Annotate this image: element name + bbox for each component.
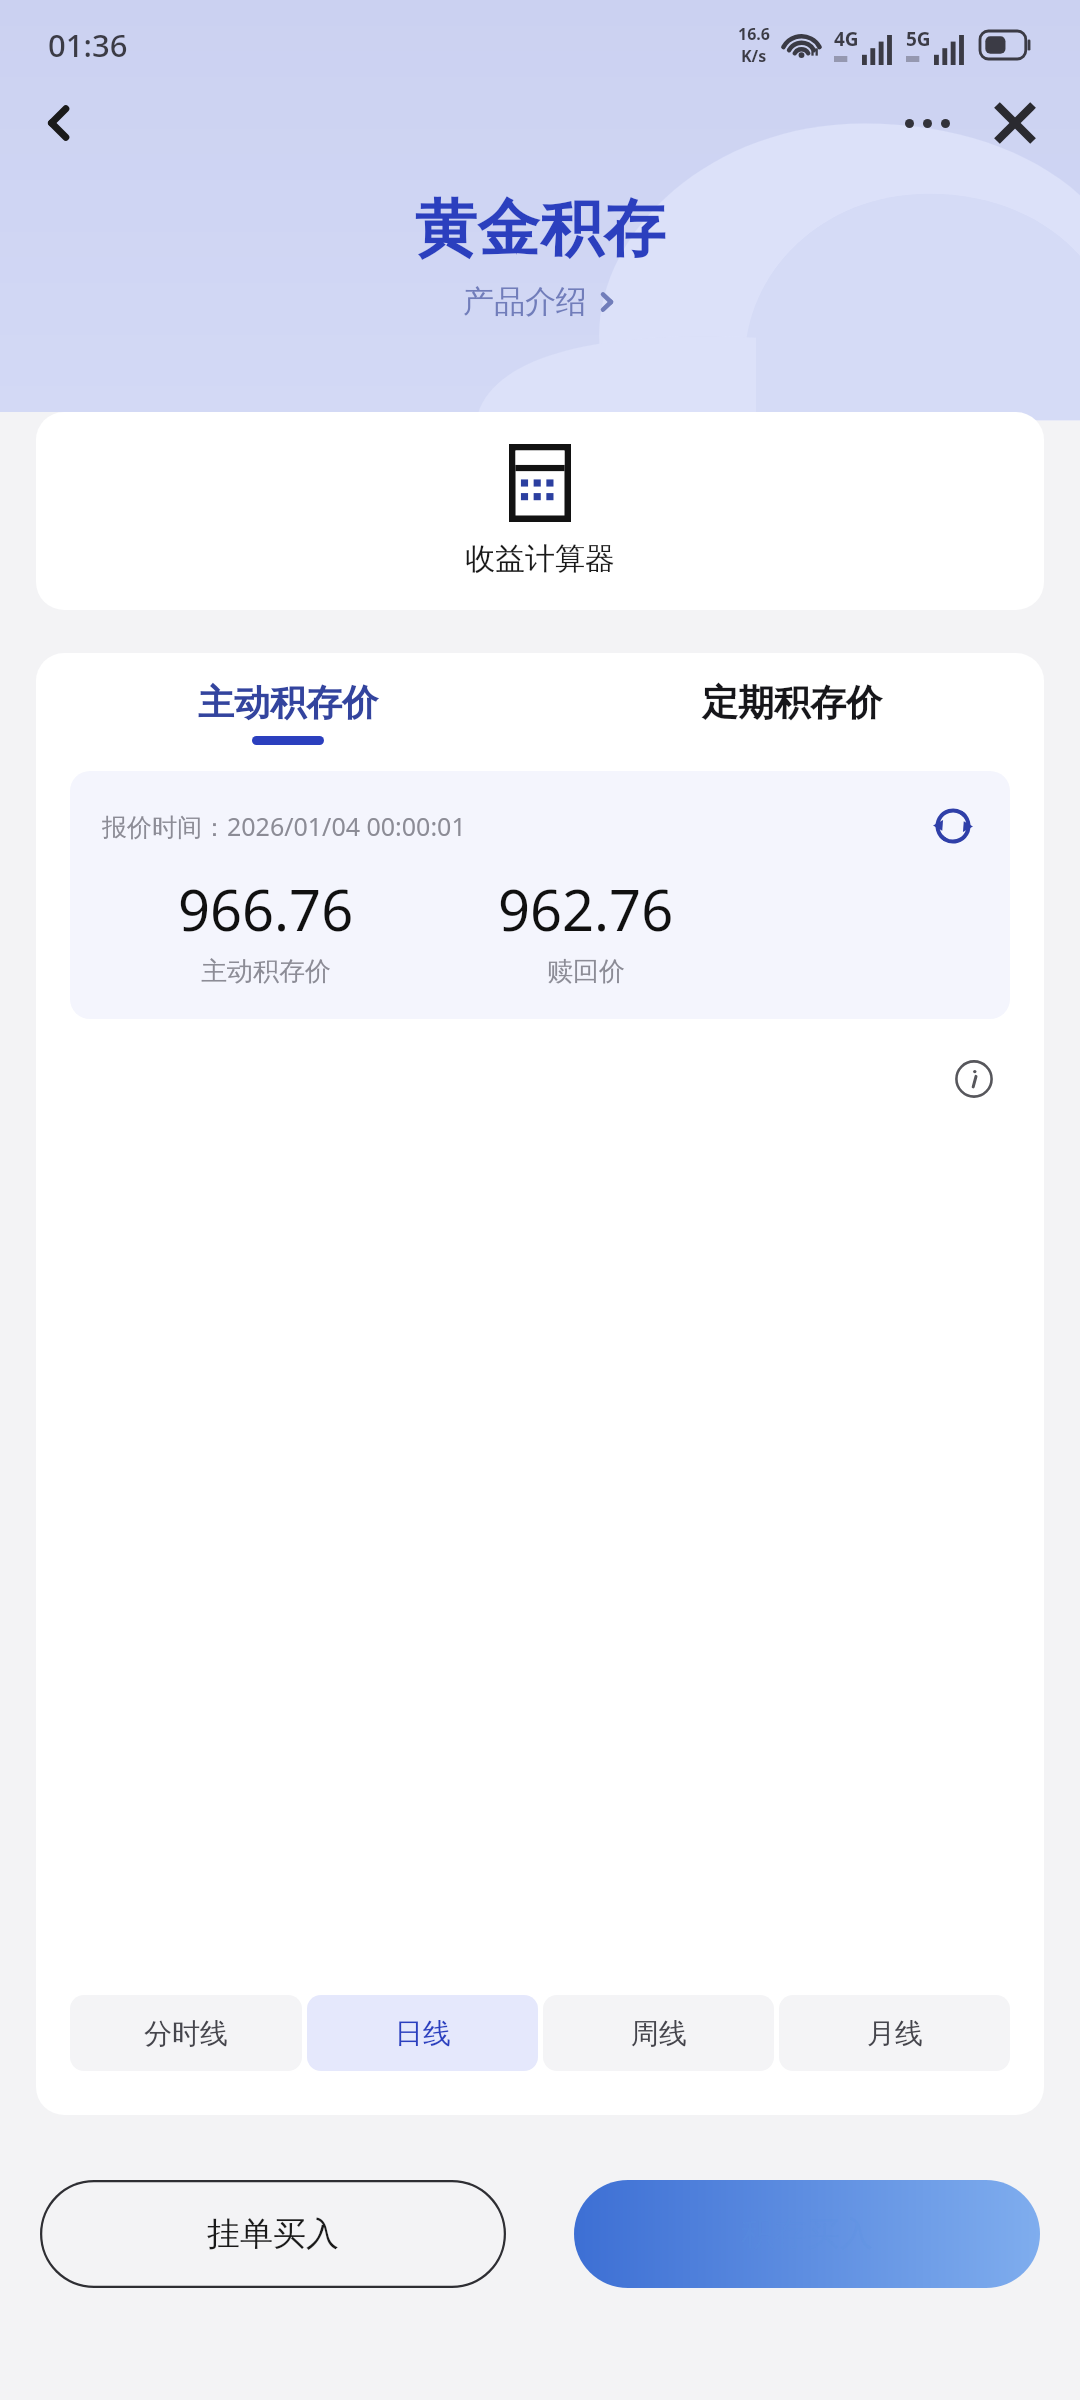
staticText: 挂单买入 — [207, 2213, 339, 2255]
staticText: 产品介绍 — [463, 282, 587, 321]
staticText: 966.76 — [178, 871, 354, 947]
button[interactable]: 挂单买入 — [40, 2180, 506, 2288]
staticText: 5G — [906, 26, 931, 52]
staticText: 4G — [834, 26, 859, 52]
button[interactable]: Back — [26, 90, 92, 156]
staticText: 定期积存价 — [702, 680, 882, 725]
button[interactable]: 分时线 — [70, 1995, 302, 2071]
staticText: 积存买入 — [741, 2213, 873, 2255]
button[interactable]: 月线 — [779, 1995, 1010, 2071]
staticText: 16.6 — [738, 23, 770, 45]
staticText: 周线 — [631, 2016, 687, 2051]
button[interactable]: 收益计算器 — [36, 412, 1044, 610]
button[interactable]: 定期积存价 — [540, 653, 1044, 771]
staticText: 主动积存价 — [201, 955, 331, 988]
staticText: 收益计算器 — [465, 540, 615, 578]
button[interactable]: 日线 — [307, 1995, 538, 2071]
button[interactable]: 主动积存价 — [36, 653, 540, 771]
staticText: 962.76 — [498, 871, 674, 947]
staticText: 报价时间：2026/01/04 00:00:01 — [102, 809, 466, 843]
staticText: K/s — [741, 45, 767, 67]
button[interactable]: 产品介绍 — [463, 282, 617, 321]
staticText: 主动积存价 — [198, 680, 378, 725]
staticText: 日线 — [395, 2016, 451, 2051]
staticText: 赎回价 — [547, 955, 625, 988]
staticText: 01:36 — [48, 24, 128, 66]
button[interactable]: Information — [948, 1053, 1000, 1105]
button[interactable]: 周线 — [543, 1995, 774, 2071]
staticText: 月线 — [867, 2016, 923, 2051]
staticText: 黄金积存 — [414, 190, 666, 268]
button[interactable]: Buy — [574, 2180, 1040, 2288]
button[interactable]: Refresh — [926, 799, 980, 853]
button[interactable]: More options — [892, 90, 962, 156]
button[interactable]: Close — [980, 90, 1050, 156]
staticText: 分时线 — [144, 2016, 228, 2051]
